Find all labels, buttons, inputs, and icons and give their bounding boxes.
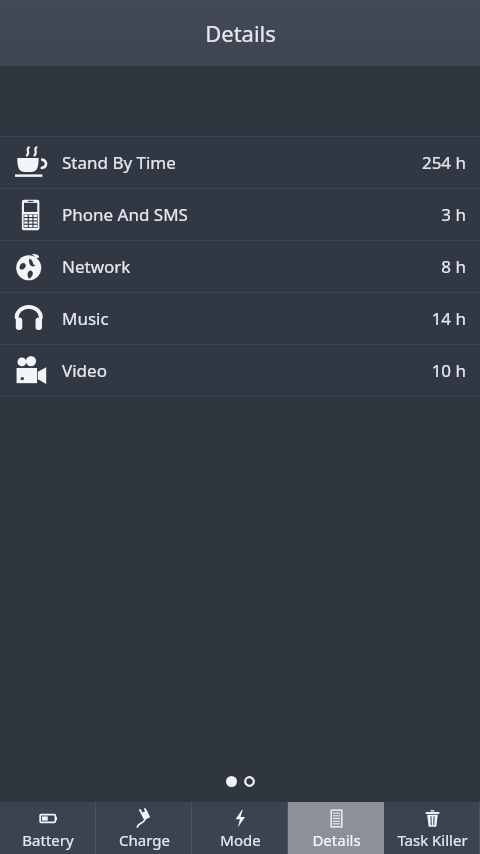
button[interactable]: Task Killer <box>384 802 480 854</box>
button[interactable]: Music <box>0 293 480 344</box>
staticText: 254 h <box>421 151 466 174</box>
button[interactable]: Charge <box>96 802 192 854</box>
staticText: Network <box>62 255 441 278</box>
staticText: Mode <box>220 830 261 850</box>
staticText: Details <box>205 18 276 48</box>
staticText: Music <box>62 307 431 330</box>
staticText: Battery <box>22 830 74 850</box>
button[interactable]: Phone And SMS <box>0 189 480 240</box>
button[interactable]: Video <box>0 345 480 396</box>
staticText: Details <box>312 830 361 850</box>
staticText: Task Killer <box>397 830 468 850</box>
staticText: 8 h <box>441 255 466 278</box>
button[interactable]: Battery <box>0 802 96 854</box>
staticText: Charge <box>119 830 170 850</box>
staticText: Video <box>62 359 431 382</box>
staticText: 3 h <box>441 203 466 226</box>
button[interactable]: Network <box>0 241 480 292</box>
staticText: Phone And SMS <box>62 203 441 226</box>
staticText: 10 h <box>431 359 466 382</box>
button[interactable]: Stand By Time <box>0 137 480 188</box>
staticText: Stand By Time <box>62 151 421 174</box>
button[interactable]: Details <box>288 802 384 854</box>
staticText: 14 h <box>431 307 466 330</box>
button[interactable]: Mode <box>192 802 288 854</box>
